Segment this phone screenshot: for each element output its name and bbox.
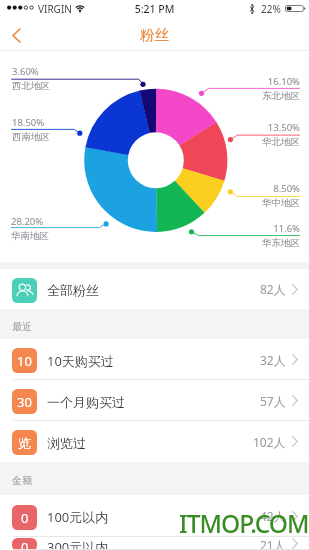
staticText: 21人 xyxy=(260,537,286,550)
staticText: 42人 xyxy=(260,508,286,524)
staticText: 华南地区 xyxy=(11,230,49,242)
staticText: 全部粉丝 xyxy=(47,282,99,298)
staticText: 22% xyxy=(261,2,281,16)
staticText: 28.20% xyxy=(11,215,44,228)
staticText: 57人 xyxy=(260,393,286,409)
staticText: 82人 xyxy=(260,281,286,297)
staticText: 览 xyxy=(18,435,31,451)
staticText: 10 xyxy=(17,352,32,370)
staticText: 100元以内 xyxy=(47,508,109,526)
staticText: 西北地区 xyxy=(12,80,50,92)
staticText: 30 xyxy=(17,393,32,411)
button[interactable]: 30 xyxy=(0,380,309,421)
staticText: 18.50% xyxy=(12,116,45,129)
staticText: 102人 xyxy=(253,434,286,450)
button[interactable]: Back xyxy=(0,20,32,51)
staticText: ITMOP.COM xyxy=(179,507,309,540)
button[interactable]: 0 xyxy=(0,495,309,537)
staticText: 粉丝 xyxy=(140,26,170,44)
button[interactable]: 10 xyxy=(0,339,309,380)
staticText: 西南地区 xyxy=(12,131,50,143)
staticText: 11.6% xyxy=(273,222,300,235)
button[interactable]: 览 xyxy=(0,421,309,462)
staticText: 5:21 PM xyxy=(0,2,309,16)
staticText: 华中地区 xyxy=(262,197,300,209)
staticText: 0 xyxy=(21,538,29,550)
staticText: 华北地区 xyxy=(262,136,300,148)
staticText: 华东地区 xyxy=(262,237,300,249)
staticText: 8.50% xyxy=(273,182,300,195)
staticText: 金额 xyxy=(12,474,32,487)
staticText: 浏览过 xyxy=(47,435,86,451)
staticText: 3.60% xyxy=(12,65,39,78)
staticText: 16.10% xyxy=(267,75,300,88)
staticText: 东北地区 xyxy=(262,90,300,102)
staticText: 一个月购买过 xyxy=(47,394,125,410)
staticText: 300元以内 xyxy=(47,538,109,550)
staticText: VIRGIN xyxy=(38,2,72,16)
button[interactable]: 全部粉丝 xyxy=(0,269,309,309)
staticText: 10天购买过 xyxy=(47,352,114,370)
staticText: 最近 xyxy=(12,320,32,333)
button[interactable]: 0 xyxy=(0,537,309,550)
staticText: 13.50% xyxy=(267,121,300,134)
staticText: 32人 xyxy=(260,352,286,368)
staticText: 0 xyxy=(21,509,29,527)
